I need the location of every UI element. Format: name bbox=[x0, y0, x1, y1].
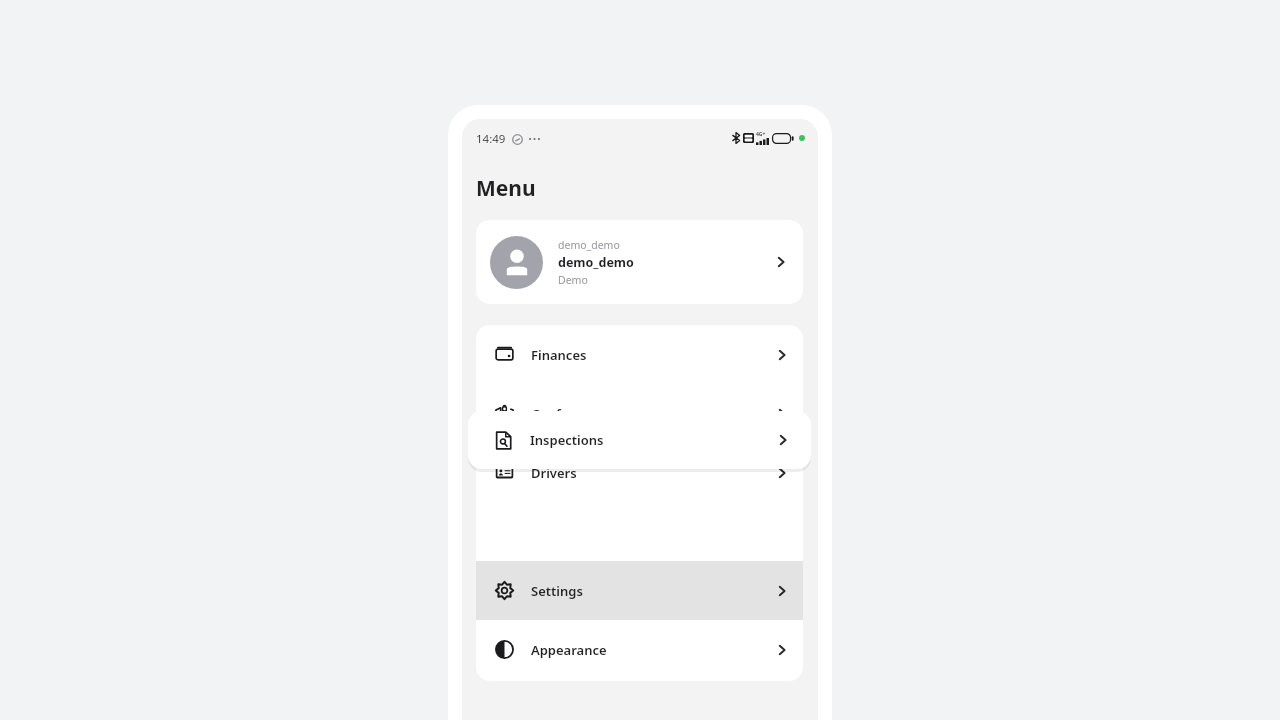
button[interactable]: demo_demo bbox=[476, 220, 803, 304]
staticText: Drivers bbox=[531, 464, 577, 482]
button[interactable]: Inspections bbox=[468, 411, 811, 469]
button[interactable]: Geofences bbox=[476, 384, 803, 443]
staticText: Geofences bbox=[531, 405, 598, 423]
button[interactable]: Finances bbox=[476, 325, 803, 384]
staticText: Settings bbox=[531, 582, 583, 600]
staticText: demo_demo bbox=[558, 254, 634, 271]
button[interactable]: Appearance bbox=[476, 620, 803, 679]
button[interactable]: Drivers bbox=[476, 443, 803, 502]
button[interactable]: Settings bbox=[476, 561, 803, 620]
staticText: 14:49 bbox=[476, 131, 506, 147]
staticText: demo_demo bbox=[558, 238, 620, 252]
staticText: Appearance bbox=[531, 641, 607, 659]
staticText: Inspections bbox=[530, 431, 604, 449]
staticText: Menu bbox=[476, 174, 536, 203]
staticText: Demo bbox=[558, 273, 588, 287]
staticText: 4G+ bbox=[756, 131, 766, 138]
staticText: Finances bbox=[531, 346, 587, 364]
